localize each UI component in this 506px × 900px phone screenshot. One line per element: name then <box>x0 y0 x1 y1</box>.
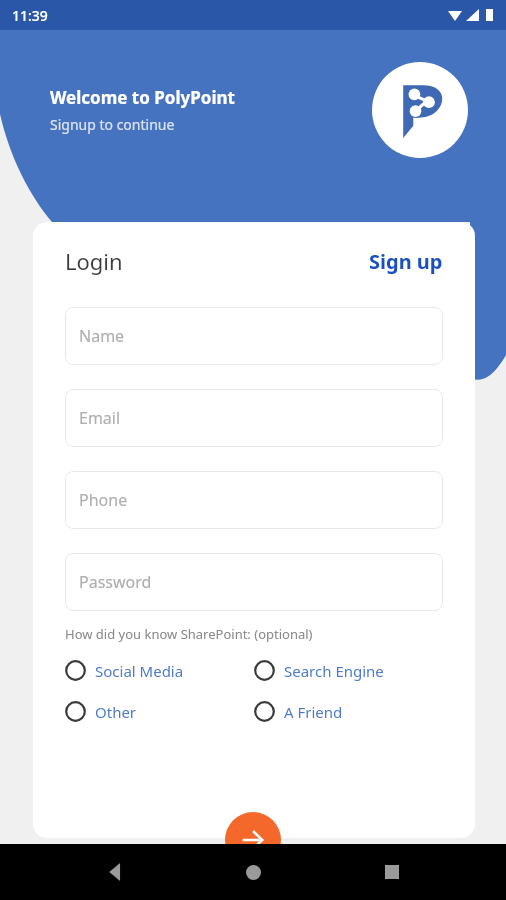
staticText: 11:39 <box>12 6 48 25</box>
staticText: Login <box>65 246 123 276</box>
button[interactable]: Search Engine <box>254 655 443 686</box>
staticText: Search Engine <box>284 661 384 681</box>
staticText: Name <box>79 325 125 347</box>
button[interactable]: Login <box>65 242 123 280</box>
button[interactable]: Recents <box>368 848 416 896</box>
other: PolyPoint logo <box>372 62 468 158</box>
button[interactable]: Other <box>65 696 254 727</box>
button[interactable]: Back <box>91 848 139 896</box>
button[interactable]: Social Media <box>65 655 254 686</box>
button[interactable]: Name <box>65 307 443 365</box>
staticText: Signup to continue <box>50 115 175 134</box>
staticText: Email <box>79 407 121 429</box>
staticText: A Friend <box>284 702 343 722</box>
staticText: Welcome to PolyPoint <box>50 86 235 109</box>
button[interactable]: Email <box>65 389 443 447</box>
staticText: Password <box>79 571 152 593</box>
button[interactable]: Sign up <box>369 244 443 279</box>
button[interactable]: Continue <box>225 812 281 868</box>
staticText: Phone <box>79 489 128 511</box>
staticText: Other <box>95 702 137 722</box>
button[interactable]: Password <box>65 553 443 611</box>
staticText: Sign up <box>369 248 443 275</box>
staticText: How did you know SharePoint: (optional) <box>65 625 313 643</box>
staticText: Social Media <box>95 661 184 681</box>
button[interactable]: Phone <box>65 471 443 529</box>
button[interactable]: Home <box>229 848 277 896</box>
button[interactable]: A Friend <box>254 696 443 727</box>
